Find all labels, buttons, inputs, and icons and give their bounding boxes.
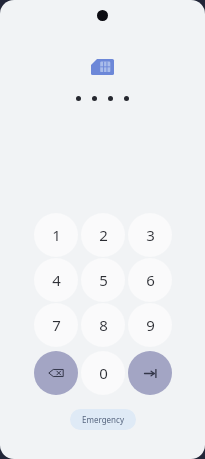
staticText: 3 <box>146 225 155 245</box>
staticText: 7 <box>52 315 61 335</box>
button[interactable]: 3 <box>128 213 172 257</box>
button[interactable]: 4 <box>34 258 78 302</box>
button[interactable]: 5 <box>81 258 125 302</box>
staticText: 6 <box>146 270 155 290</box>
button[interactable]: 8 <box>81 303 125 347</box>
button[interactable]: Emergency <box>70 409 136 430</box>
button[interactable]: Enter PIN <box>128 351 172 395</box>
staticText: 9 <box>146 315 155 335</box>
button[interactable]: 7 <box>34 303 78 347</box>
staticText: 1 <box>52 225 61 245</box>
staticText: 4 <box>52 270 61 290</box>
button[interactable]: 2 <box>81 213 125 257</box>
button[interactable]: 0 <box>81 351 125 395</box>
button[interactable]: 1 <box>34 213 78 257</box>
button[interactable]: Backspace <box>34 351 78 395</box>
staticText: 8 <box>99 315 108 335</box>
staticText: 0 <box>99 363 108 383</box>
button[interactable]: 9 <box>128 303 172 347</box>
button[interactable]: 6 <box>128 258 172 302</box>
staticText: 2 <box>99 225 108 245</box>
staticText: Emergency <box>82 414 124 425</box>
staticText: 5 <box>99 270 108 290</box>
